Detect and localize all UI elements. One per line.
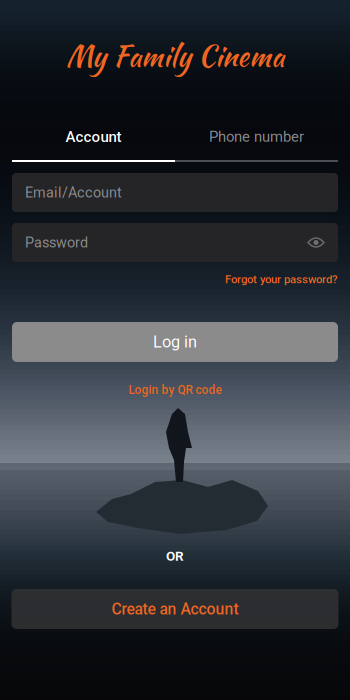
- button[interactable]: Login by QR code: [128, 382, 221, 398]
- button[interactable]: Create an Account: [11, 589, 338, 629]
- staticText: Forgot your password?: [225, 273, 338, 286]
- staticText: Email/Account: [25, 184, 122, 201]
- staticText: Login by QR code: [128, 383, 221, 397]
- staticText: Account: [65, 128, 121, 146]
- button[interactable]: Log in: [12, 322, 338, 362]
- staticText: OR: [166, 548, 184, 564]
- staticText: Log in: [153, 332, 197, 352]
- staticText: Phone number: [209, 128, 304, 145]
- button[interactable]: Forgot your password?: [12, 271, 338, 288]
- staticText: My Family Cinema: [66, 35, 284, 77]
- staticText: Create an Account: [111, 600, 238, 618]
- staticText: Password: [25, 234, 88, 251]
- button[interactable]: Account: [12, 128, 175, 160]
- button[interactable]: Phone number: [175, 128, 338, 160]
